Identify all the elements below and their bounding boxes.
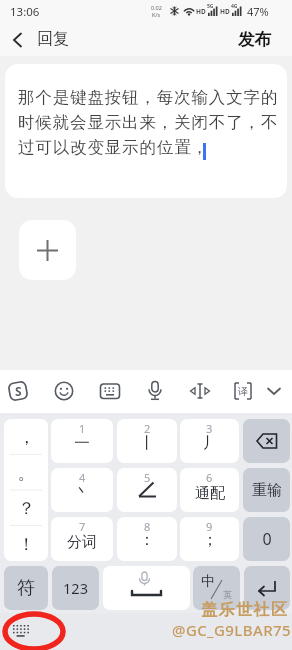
staticText: 丶 [74,482,90,502]
staticText: 5G [207,3,214,10]
button[interactable]: 123 [52,566,99,610]
button[interactable]: 7 [51,517,113,561]
staticText: 0 [262,528,272,550]
button[interactable]: 3 [180,419,239,463]
button[interactable]: 6 [180,468,239,512]
button[interactable]: 那个是键盘按钮，每次输入文字的 时候就会显示出来，关闭不了，不 过可以改变显示的… [5,64,287,198]
button[interactable]: 8 [117,517,177,561]
staticText: HD [196,7,206,16]
staticText: 译 [238,385,248,398]
staticText: 一 [74,433,90,453]
staticText: 丿 [202,433,218,453]
button[interactable]: 9 [180,517,239,561]
staticText: 4 [79,470,86,485]
staticText: 47% [247,4,269,19]
staticText: ， [18,427,35,448]
button[interactable] [244,566,290,610]
staticText: 8 [144,519,151,534]
staticText: 。 [18,463,35,484]
staticText: 0.02 [151,4,162,11]
staticText: 7 [79,519,86,534]
button[interactable]: 2 [117,419,177,463]
staticText: 那个是键盘按钮，每次输入文字的 时候就会显示出来，关闭不了，不 过可以改变显示的… [18,87,279,158]
staticText: @GC_G9LBAR75 [172,620,291,640]
button[interactable]: 0 [243,517,290,561]
staticText: 9 [206,519,213,534]
staticText: ？ [18,498,35,519]
staticText: 5 [144,470,151,485]
button[interactable]: 发布 [238,29,271,50]
staticText: S [15,383,22,399]
button[interactable] [103,566,190,610]
staticText: 13:06 [10,4,40,20]
button[interactable]: 重输 [243,468,290,512]
staticText: K/s [152,11,161,18]
staticText: 4G [231,3,238,10]
button[interactable] [261,378,287,404]
staticText: 中 [201,573,215,591]
staticText: 分词 [67,533,97,552]
staticText: 123 [63,578,88,598]
staticText: 重输 [252,481,282,500]
button[interactable] [51,378,77,404]
staticText: 发布 [238,29,271,50]
staticText: 6 [206,470,213,485]
button[interactable] [142,378,168,404]
staticText: 盖乐世社区 [201,600,289,620]
staticText: HD [220,7,230,16]
staticText: ； [202,530,218,550]
button[interactable] [187,378,213,404]
button[interactable]: 中 [193,566,240,610]
button[interactable]: S [5,378,31,404]
staticText: ： [139,530,155,550]
staticText: 英 [223,589,232,600]
button[interactable]: ， [4,419,48,561]
button[interactable] [97,378,123,404]
staticText: 丨 [139,433,155,453]
button[interactable] [6,28,30,52]
staticText: 通配 [195,484,225,503]
button[interactable]: 1 [51,419,113,463]
button[interactable]: 符 [4,566,48,610]
staticText: 1 [79,421,86,436]
button[interactable]: 4 [51,468,113,512]
button[interactable] [243,419,290,463]
button[interactable] [9,620,37,644]
staticText: 回复 [37,29,69,49]
staticText: 3 [206,421,213,436]
staticText: ！ [18,534,35,555]
staticText: 符 [17,577,35,600]
staticText: 2 [144,421,151,436]
button[interactable]: 5 [117,468,177,512]
button[interactable] [19,220,76,280]
button[interactable]: 译 [230,378,256,404]
